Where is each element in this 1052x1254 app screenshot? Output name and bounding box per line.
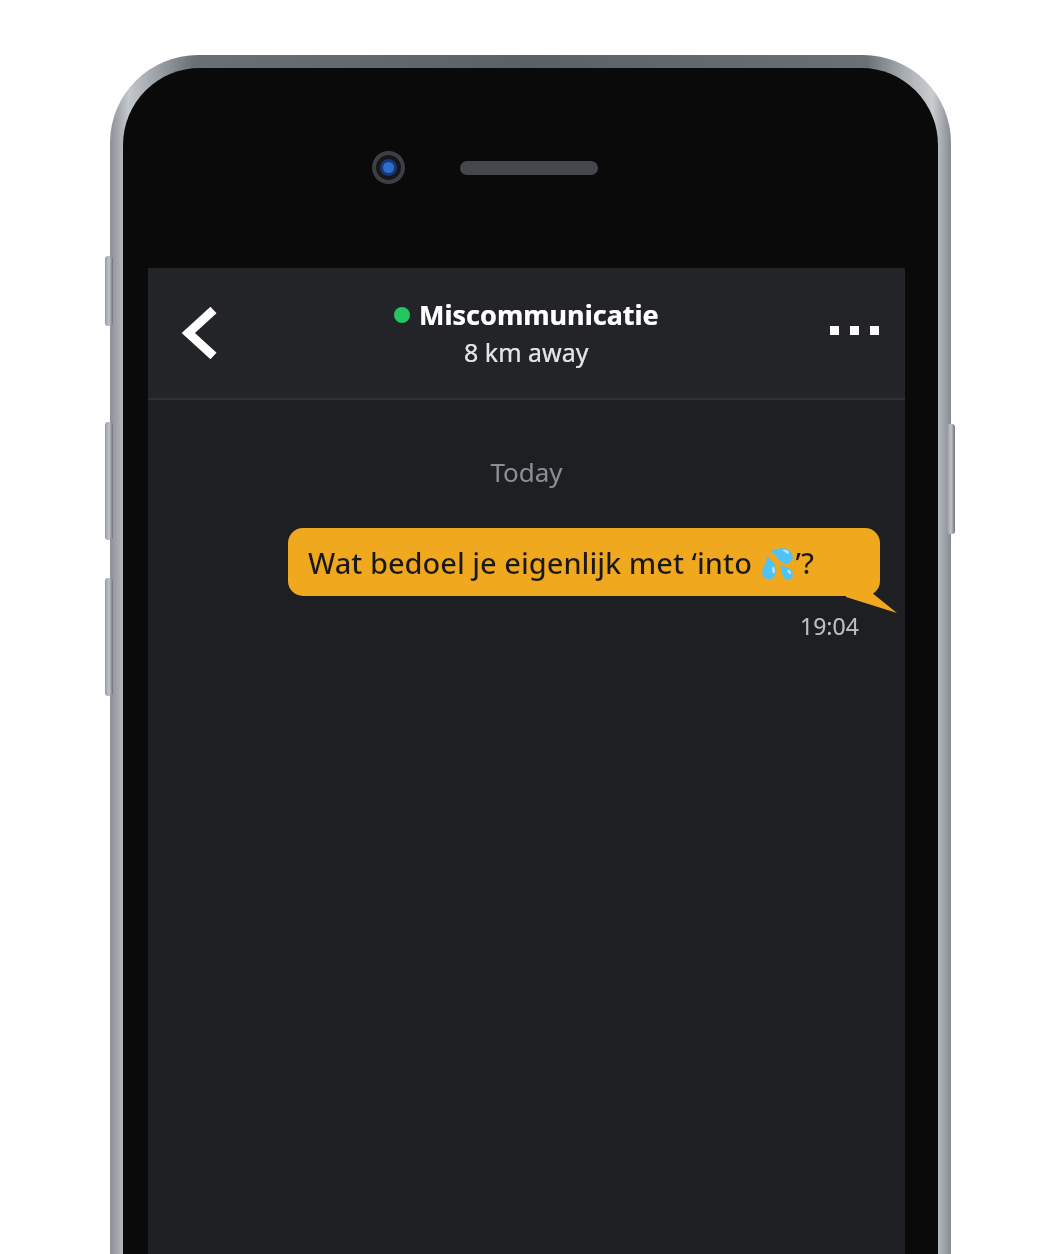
staticText: Wat bedoel je eigenlijk met ‘into 💦’? <box>308 543 814 582</box>
button[interactable]: Wat bedoel je eigenlijk met ‘into 💦’? <box>288 528 880 596</box>
button[interactable]: Back <box>158 292 240 374</box>
staticText: 19:04 <box>800 610 859 641</box>
button[interactable]: More options <box>813 289 895 371</box>
staticText: Miscommunicatie <box>419 296 659 333</box>
staticText: Today <box>148 454 905 489</box>
staticText: 8 km away <box>464 335 589 369</box>
